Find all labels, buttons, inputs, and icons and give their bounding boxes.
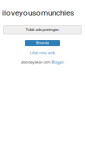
button[interactable]: Beranda [25, 40, 60, 46]
staticText: Lihat versi web [30, 51, 55, 55]
button[interactable]: Blogger [51, 60, 63, 64]
staticText: Diberdayakan oleh [20, 60, 51, 64]
staticText: Blogger [51, 60, 63, 64]
staticText: iloveyousomunchies [2, 8, 74, 17]
button[interactable]: Lihat versi web [30, 51, 55, 55]
staticText: Beranda [36, 41, 49, 45]
staticText: Tidak ada postingan. [25, 27, 59, 32]
